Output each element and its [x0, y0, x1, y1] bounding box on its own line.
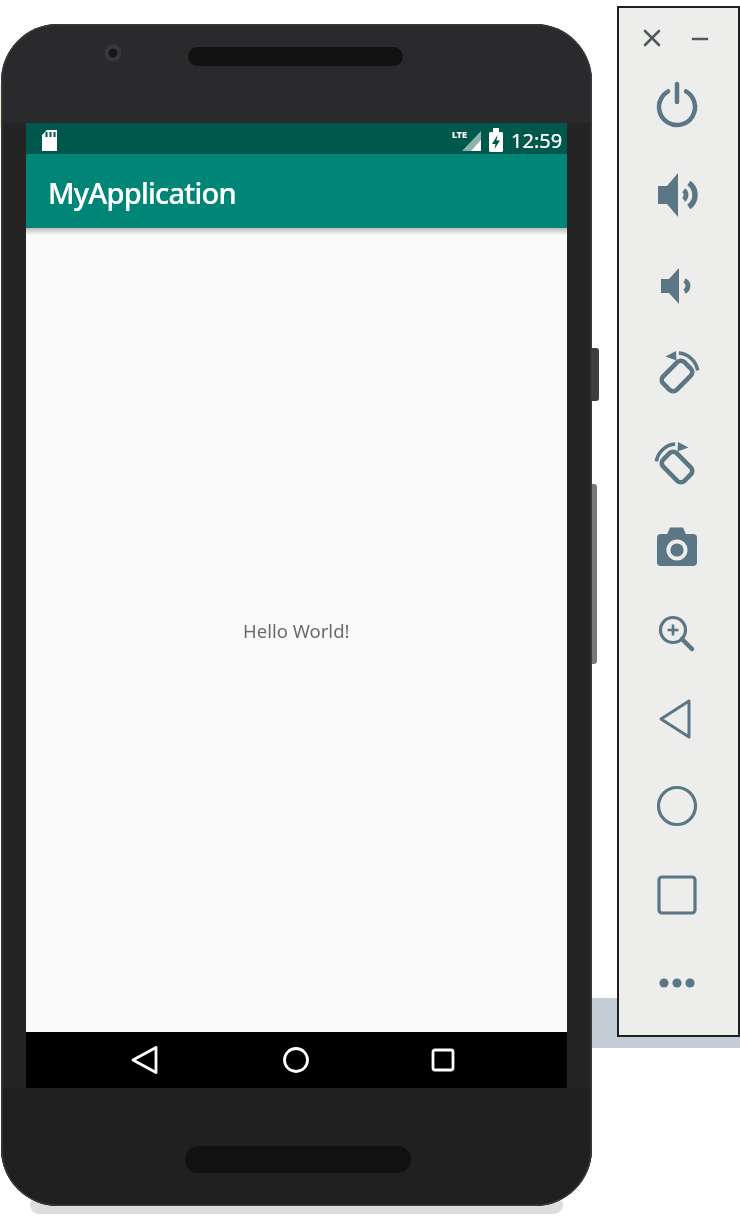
- button[interactable]: [123, 1038, 167, 1082]
- button[interactable]: [653, 350, 701, 398]
- button[interactable]: [653, 81, 701, 129]
- button[interactable]: [653, 441, 701, 489]
- staticText: 12:59: [511, 127, 563, 154]
- staticText: Hello World!: [243, 618, 350, 643]
- button[interactable]: [653, 610, 701, 658]
- button[interactable]: [653, 525, 701, 573]
- button[interactable]: [274, 1038, 318, 1082]
- button[interactable]: [653, 782, 701, 830]
- button[interactable]: MyApplication: [26, 154, 567, 228]
- button[interactable]: [637, 23, 667, 53]
- button[interactable]: [653, 171, 701, 219]
- button[interactable]: [685, 23, 715, 53]
- staticText: MyApplication: [48, 173, 236, 212]
- button[interactable]: [653, 959, 701, 1007]
- staticText: LTE: [452, 128, 468, 140]
- button[interactable]: [653, 695, 701, 743]
- button[interactable]: [653, 871, 701, 919]
- button[interactable]: [421, 1038, 465, 1082]
- button[interactable]: [653, 262, 701, 310]
